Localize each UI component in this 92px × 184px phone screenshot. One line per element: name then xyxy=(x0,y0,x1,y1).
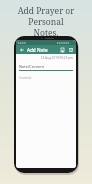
staticText: Add Prayer or Personal Notes. xyxy=(3,5,89,38)
button[interactable]: Save note xyxy=(59,46,66,53)
staticText: Add Note xyxy=(27,47,48,53)
button[interactable]: Attach image xyxy=(67,46,74,53)
staticText: Note/Content xyxy=(19,64,44,69)
button[interactable]: Note/Content xyxy=(19,64,73,71)
staticText: 14 Aug 2019 09:25 pm xyxy=(19,56,73,60)
staticText: Content xyxy=(19,75,32,79)
button[interactable]: Back xyxy=(18,46,25,53)
